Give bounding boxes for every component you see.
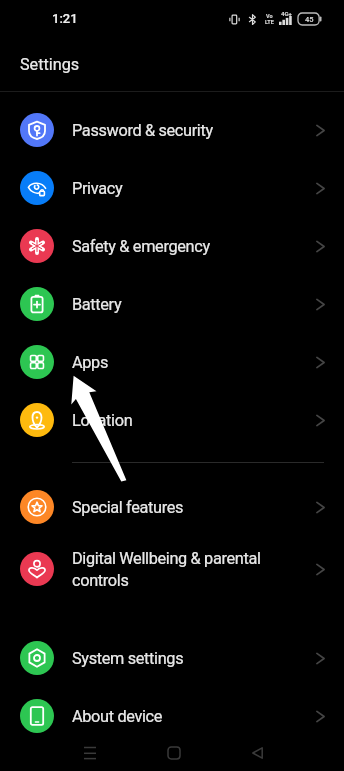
- button[interactable]: Location: [0, 391, 344, 449]
- staticText: 4G+: [281, 10, 292, 17]
- staticText: System settings: [72, 649, 308, 668]
- staticText: Safety & emergency: [72, 237, 308, 256]
- staticText: LTE: [265, 19, 274, 25]
- staticText: Digital Wellbeing & parental controls: [72, 549, 308, 590]
- button[interactable]: Special features: [0, 478, 344, 536]
- button[interactable]: Home: [154, 735, 194, 771]
- staticText: Battery: [72, 295, 308, 314]
- button[interactable]: Password & security: [0, 101, 344, 159]
- staticText: 1:21: [52, 11, 78, 26]
- button[interactable]: Battery: [0, 275, 344, 333]
- button[interactable]: Privacy: [0, 159, 344, 217]
- button[interactable]: Safety & emergency: [0, 217, 344, 275]
- button[interactable]: System settings: [0, 629, 344, 687]
- staticText: Vo: [266, 13, 273, 19]
- staticText: Apps: [72, 353, 308, 372]
- staticText: Settings: [20, 55, 80, 74]
- staticText: Special features: [72, 498, 308, 517]
- staticText: About device: [72, 707, 308, 726]
- button[interactable]: Back: [237, 735, 277, 771]
- staticText: Privacy: [72, 179, 308, 198]
- staticText: Location: [72, 411, 308, 430]
- button[interactable]: About device: [0, 687, 344, 745]
- button[interactable]: Recent apps: [70, 735, 110, 771]
- staticText: 45: [305, 15, 314, 24]
- button[interactable]: Digital Wellbeing & parental controls: [0, 536, 344, 602]
- button[interactable]: Apps: [0, 333, 344, 391]
- staticText: Password & security: [72, 121, 308, 140]
